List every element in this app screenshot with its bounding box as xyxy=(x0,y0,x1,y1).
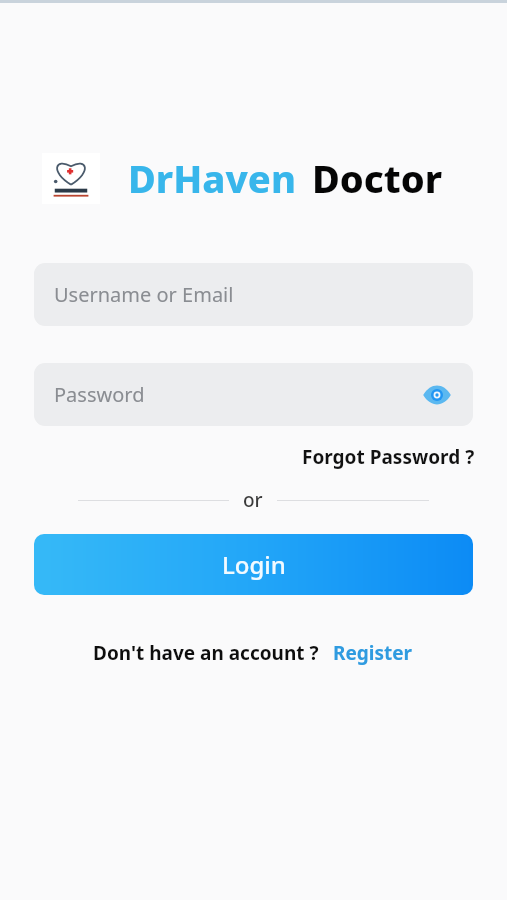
staticText: Username or Email xyxy=(54,281,234,308)
button[interactable]: Password xyxy=(34,363,473,426)
staticText: Forgot Password ? xyxy=(302,444,475,470)
button[interactable]: Username or Email xyxy=(34,263,473,326)
button[interactable]: DrHaven logo xyxy=(42,153,100,204)
staticText: Don't have an account ? xyxy=(93,640,319,666)
staticText: Login xyxy=(222,548,286,581)
button[interactable]: Forgot Password ? xyxy=(300,440,477,474)
staticText: or xyxy=(243,487,263,513)
staticText: Doctor xyxy=(312,152,443,204)
button[interactable]: Register xyxy=(331,636,415,670)
button[interactable]: Login xyxy=(34,534,473,595)
staticText: DrHaven xyxy=(128,152,296,204)
staticText: Register xyxy=(333,640,413,666)
staticText: Password xyxy=(54,381,145,408)
button[interactable]: Show password xyxy=(415,373,459,417)
